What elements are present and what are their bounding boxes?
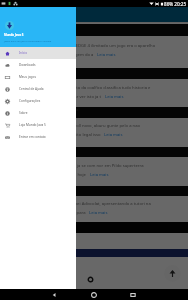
staticText: tambem para depois de tudo. Esperar ver … [4, 94, 103, 100]
staticText: Central de Ajuda [19, 87, 44, 91]
button[interactable]: A nova Play Store chegou ao Brasil [0, 186, 188, 196]
staticText: Configurações [19, 99, 41, 103]
button[interactable]: Leia mais [89, 210, 108, 216]
button[interactable]: Downloads [0, 59, 76, 71]
staticText: Mundo Java 5 completa 6 anos de vida! [3, 25, 62, 29]
staticText: A nova versao ao sesta saveo em Sonei Ad… [4, 201, 188, 207]
staticText: Os programas de treinamento unidiroll no… [4, 123, 188, 129]
button[interactable]: Leia mais [90, 172, 109, 178]
staticText: Downloads [19, 63, 36, 67]
button[interactable]: Leia mais [104, 132, 123, 138]
button[interactable]: Scroll to top [164, 265, 181, 282]
staticText: deixou de funcionar e vamos ver isto hoj… [4, 172, 88, 178]
button[interactable]: Sobre [0, 107, 76, 119]
button[interactable]: Entrar em contato [0, 131, 76, 143]
button[interactable]: Início [0, 47, 76, 59]
button[interactable] [0, 222, 188, 233]
button[interactable]: Baixe o app agora [0, 249, 188, 257]
button[interactable]: Os programas de treinamento ja estao dis… [0, 107, 188, 118]
staticText: 86% 20:25 [164, 1, 187, 7]
staticText: Aproveite a promocao para tornar o EDGE … [4, 43, 188, 49]
button[interactable]: Leia mais [97, 52, 116, 58]
button[interactable]: Nova atualizacao do aplicativo ja dispon… [0, 68, 188, 79]
staticText: Agora o Mundo contra uma nova visita da … [4, 85, 188, 91]
staticText: Jogos para seu Java e Distribuidor Andro… [4, 39, 52, 42]
staticText: e aproveite para conferir a nova imagem … [4, 52, 95, 58]
staticText: Entrar em contato [19, 135, 46, 139]
button[interactable]: Leia mais [105, 94, 124, 100]
staticText: Loja Mundo Java 5 [19, 123, 46, 127]
staticText: Sobre [19, 111, 28, 115]
button[interactable]: Loja Mundo Java 5 [0, 119, 76, 131]
button[interactable]: Voce ainda usa celular? Whatsapp ja esta [0, 147, 188, 157]
button[interactable]: Meus jogos [0, 71, 76, 83]
staticText: Os programas de treinamento ja estao dis… [3, 108, 79, 112]
button[interactable]: Central de Ajuda [0, 83, 76, 95]
staticText: Mundo Java 5 [4, 33, 24, 37]
staticText: Meus jogos [19, 75, 36, 79]
staticText: nova loja do Android agora ja esta la pa… [4, 210, 87, 216]
button[interactable]: Mundo Java 5 completa 6 anos de vida! [0, 24, 188, 36]
staticText: tambem para vamos fantastico e muito leg… [4, 132, 102, 138]
button[interactable]: Recent apps [118, 289, 148, 300]
staticText: Início [19, 51, 28, 55]
button[interactable]: Configurações [0, 95, 76, 107]
button[interactable]: Home [79, 289, 109, 300]
staticText: Se voce ainda usa celular? Whatsapp ja s… [4, 163, 188, 169]
button[interactable]: Back [40, 289, 70, 300]
